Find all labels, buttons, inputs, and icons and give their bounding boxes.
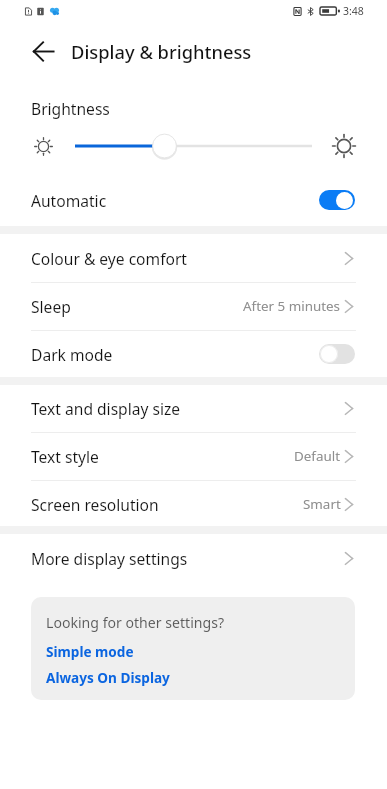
button[interactable]: Simple mode [46, 638, 134, 662]
button[interactable]: Back [23, 31, 63, 71]
button[interactable]: Dark mode [0, 330, 387, 378]
staticText: Screen resolution [31, 494, 159, 515]
staticText: Text style [31, 446, 99, 467]
button[interactable]: Text and display size [0, 384, 387, 432]
staticText: Simple mode [46, 642, 134, 661]
button[interactable]: Always On Display [46, 664, 170, 688]
staticText: 3:48 [343, 4, 364, 18]
button[interactable]: Colour & eye comfort [0, 234, 387, 282]
staticText: Colour & eye comfort [31, 248, 187, 269]
staticText: Text and display size [31, 398, 181, 419]
button[interactable]: Text style [0, 432, 387, 480]
staticText: More display settings [31, 548, 188, 569]
button[interactable]: Automatic [0, 176, 387, 224]
button[interactable]: More display settings [0, 534, 387, 582]
staticText: Always On Display [46, 668, 170, 687]
staticText: Brightness [31, 98, 110, 119]
staticText: After 5 minutes [243, 297, 341, 315]
staticText: Sleep [31, 296, 71, 317]
staticText: Smart [303, 495, 341, 513]
staticText: Dark mode [31, 344, 113, 365]
button[interactable]: Screen resolution [0, 480, 387, 528]
button[interactable]: Sleep [0, 282, 387, 330]
staticText: Default [294, 447, 341, 465]
staticText: Automatic [31, 190, 107, 211]
staticText: Looking for other settings? [46, 613, 225, 632]
staticText: Display & brightness [71, 39, 252, 64]
